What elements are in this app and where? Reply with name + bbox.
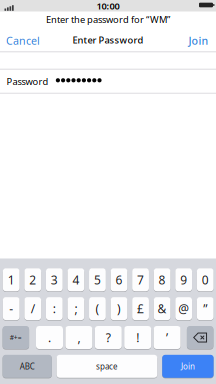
button[interactable]: 3: [46, 268, 63, 292]
button[interactable]: ): [111, 297, 127, 321]
button[interactable]: 9: [175, 268, 192, 292]
button[interactable]: ;: [67, 297, 84, 321]
button[interactable]: Delete: [187, 325, 213, 349]
staticText: -: [9, 301, 13, 316]
staticText: 0: [202, 272, 209, 288]
button[interactable]: ?: [95, 325, 122, 349]
button[interactable]: !: [124, 325, 151, 349]
staticText: :: [53, 301, 56, 316]
button[interactable]: 2: [24, 268, 41, 292]
button[interactable]: .: [36, 325, 63, 349]
button[interactable]: Password: [0, 70, 216, 92]
staticText: £: [137, 301, 144, 316]
button[interactable]: Join: [185, 31, 211, 49]
staticText: #+=: [10, 333, 22, 342]
button[interactable]: ’: [154, 325, 181, 349]
staticText: 6: [115, 272, 122, 288]
staticText: Password: [6, 75, 48, 88]
button[interactable]: £: [132, 297, 149, 321]
staticText: &: [158, 301, 167, 316]
staticText: 3: [51, 272, 58, 288]
button[interactable]: 0: [197, 268, 214, 292]
staticText: space: [96, 361, 118, 372]
staticText: Enter Password: [72, 34, 143, 46]
staticText: 10:00: [96, 0, 119, 12]
staticText: Cancel: [6, 33, 40, 48]
button[interactable]: Cancel: [4, 31, 42, 49]
button[interactable]: 6: [111, 268, 127, 292]
staticText: 4: [72, 272, 79, 288]
staticText: ’: [166, 329, 168, 345]
staticText: (: [95, 301, 99, 316]
button[interactable]: ,: [65, 325, 92, 349]
staticText: 5: [94, 272, 101, 288]
staticText: Enter the password for “WM”: [46, 13, 170, 26]
button[interactable]: /: [24, 297, 41, 321]
staticText: !: [136, 329, 139, 345]
staticText: 2: [29, 272, 36, 288]
staticText: ,: [77, 329, 80, 345]
staticText: 1: [8, 272, 15, 288]
button[interactable]: 7: [132, 268, 149, 292]
button[interactable]: &: [154, 297, 170, 321]
button[interactable]: :: [46, 297, 63, 321]
button[interactable]: 4: [67, 268, 84, 292]
button[interactable]: @: [175, 297, 192, 321]
button[interactable]: ABC: [3, 354, 52, 378]
staticText: 7: [137, 272, 144, 288]
staticText: 8: [159, 272, 166, 288]
staticText: ”: [203, 301, 207, 316]
button[interactable]: 8: [154, 268, 170, 292]
button[interactable]: 5: [89, 268, 106, 292]
button[interactable]: ”: [197, 297, 214, 321]
button[interactable]: -: [3, 297, 20, 321]
staticText: ): [117, 301, 121, 316]
staticText: 9: [180, 272, 187, 288]
button[interactable]: 1: [3, 268, 20, 292]
staticText: /: [31, 301, 35, 316]
staticText: ;: [74, 301, 77, 316]
button[interactable]: Join: [162, 354, 214, 378]
button[interactable]: #+=: [3, 325, 29, 349]
staticText: ?: [106, 329, 111, 345]
staticText: @: [178, 301, 189, 316]
staticText: ABC: [20, 361, 35, 372]
staticText: Join: [181, 361, 195, 372]
button[interactable]: space: [57, 354, 157, 378]
button[interactable]: (: [89, 297, 106, 321]
staticText: Join: [188, 33, 208, 48]
staticText: .: [48, 329, 51, 345]
